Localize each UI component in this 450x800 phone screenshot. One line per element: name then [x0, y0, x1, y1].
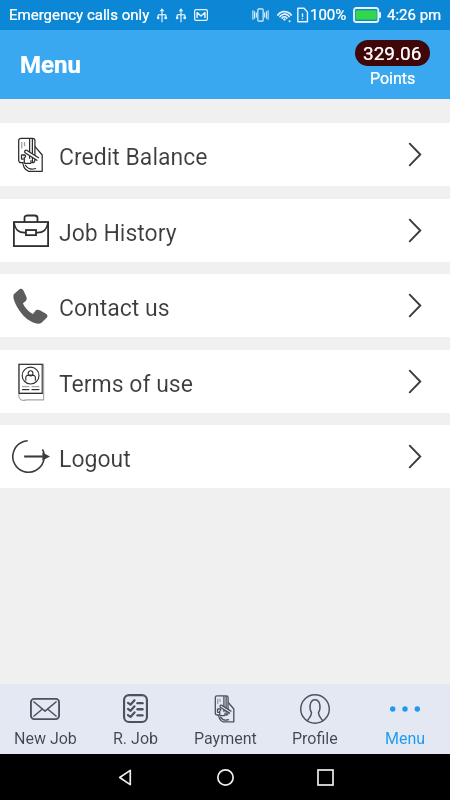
staticText: Menu [385, 729, 426, 748]
staticText: 4:26 pm [387, 6, 442, 24]
staticText: New Job [14, 729, 77, 748]
button[interactable]: Recents [275, 754, 375, 800]
button[interactable]: Profile [270, 684, 360, 754]
staticText: Emergency calls only [9, 6, 150, 24]
staticText: R. Job [113, 729, 158, 748]
staticText: Terms of use [59, 371, 193, 398]
staticText: Points [370, 69, 416, 88]
staticText: Menu [20, 51, 81, 79]
button[interactable]: Menu [360, 684, 450, 754]
staticText: Logout [59, 446, 131, 473]
button[interactable]: Job History [0, 199, 450, 262]
staticText: 100% [310, 6, 347, 24]
button[interactable]: R. Job [90, 684, 180, 754]
staticText: Profile [292, 729, 338, 748]
button[interactable]: Back [75, 754, 175, 800]
staticText: Job History [59, 220, 177, 247]
staticText: Credit Balance [59, 144, 208, 171]
button[interactable]: Credit Balance [0, 123, 450, 186]
button[interactable]: Contact us [0, 274, 450, 337]
staticText: 329.06 [363, 42, 422, 64]
button[interactable]: Payment [180, 684, 270, 754]
button[interactable]: Home [175, 754, 275, 800]
staticText: Payment [194, 729, 257, 748]
button[interactable]: New Job [0, 684, 90, 754]
button[interactable]: Logout [0, 425, 450, 488]
staticText: Contact us [59, 295, 170, 322]
button[interactable]: 329.06 [355, 40, 430, 66]
button[interactable]: Terms of use [0, 350, 450, 413]
